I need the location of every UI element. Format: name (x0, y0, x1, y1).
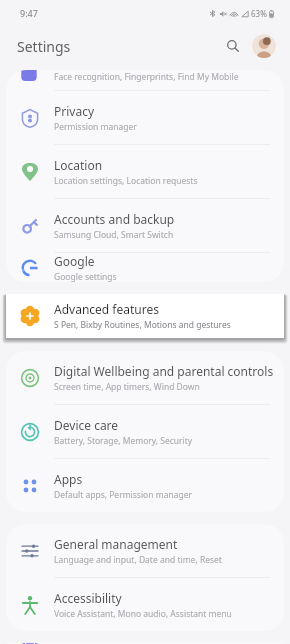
button[interactable]: Account (252, 34, 276, 58)
button[interactable]: Advanced features (6, 294, 284, 338)
staticText: Voice Assistant, Mono audio, Assistant m… (54, 608, 232, 620)
button[interactable]: Device care (6, 405, 284, 458)
staticText: Default apps, Permission manager (54, 489, 192, 501)
staticText: Battery, Storage, Memory, Security (54, 435, 193, 447)
button[interactable]: Accounts and backup (6, 199, 284, 252)
staticText: Privacy (54, 103, 95, 119)
staticText: Accessibility (54, 590, 122, 606)
staticText: Screen time, App timers, Wind Down (54, 381, 200, 393)
staticText: Digital Wellbeing and parental controls (54, 363, 274, 379)
staticText: Google settings (54, 271, 117, 282)
staticText: Google (54, 253, 95, 269)
staticText: Permission manager (54, 121, 137, 133)
staticText: Face recognition, Fingerprints, Find My … (54, 71, 239, 83)
staticText: General management (54, 536, 178, 552)
staticText: Settings (17, 37, 71, 56)
staticText: Location (54, 157, 103, 173)
staticText: Accounts and backup (54, 211, 175, 227)
staticText: 63% (251, 8, 267, 19)
button[interactable]: Apps (6, 459, 284, 512)
button[interactable]: Google (6, 253, 284, 282)
staticText: Device care (54, 417, 119, 433)
staticText: Samsung Cloud, Smart Switch (54, 229, 174, 241)
button[interactable]: Search (220, 33, 246, 59)
button[interactable]: Software update (6, 643, 284, 644)
staticText: 9:47 (20, 7, 38, 19)
button[interactable]: Location (6, 145, 284, 198)
button[interactable]: General management (6, 524, 284, 577)
staticText: Apps (54, 471, 83, 487)
staticText: S Pen, Bixby Routines, Motions and gestu… (54, 319, 231, 331)
button[interactable]: Accessibility (6, 578, 284, 631)
staticText: Advanced features (54, 301, 159, 317)
staticText: Language and input, Date and time, Reset (54, 554, 222, 566)
staticText: Location settings, Location requests (54, 175, 198, 187)
button[interactable]: Privacy (6, 91, 284, 144)
button[interactable]: Digital Wellbeing and parental controls (6, 351, 284, 404)
